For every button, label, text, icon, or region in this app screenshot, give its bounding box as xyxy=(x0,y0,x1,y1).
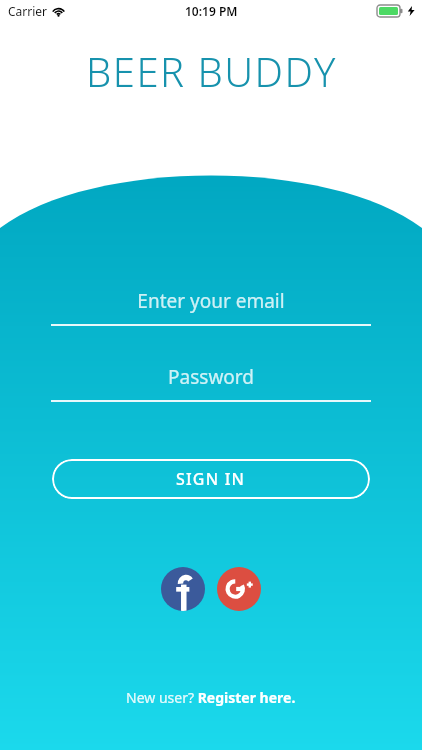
staticText: Password xyxy=(168,364,254,390)
staticText: New user? Register here. xyxy=(126,688,296,707)
button[interactable]: New user? Register here. xyxy=(116,684,306,711)
button[interactable]: Sign in with Facebook xyxy=(161,567,205,611)
button[interactable]: Password xyxy=(0,364,422,402)
button[interactable]: SIGN IN xyxy=(52,459,370,499)
button[interactable]: Sign in with Google Plus xyxy=(217,567,261,611)
staticText: Carrier xyxy=(8,3,48,19)
staticText: SIGN IN xyxy=(176,468,246,490)
staticText: 10:19 PM xyxy=(185,3,238,19)
button[interactable]: Enter your email xyxy=(0,288,422,326)
staticText: Enter your email xyxy=(137,288,285,314)
staticText: BEER BUDDY xyxy=(86,44,337,98)
